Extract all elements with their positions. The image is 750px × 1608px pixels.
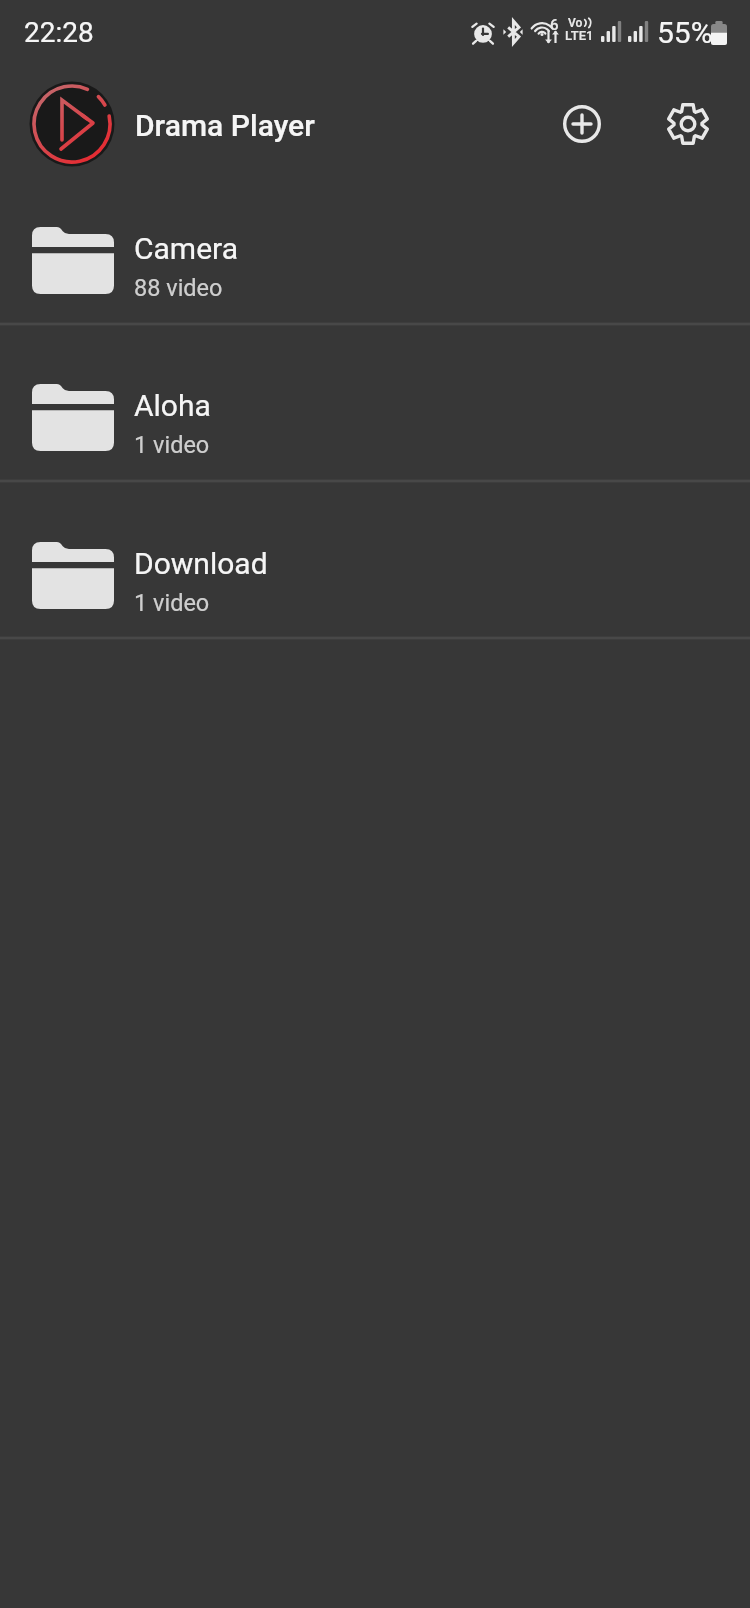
staticText: Drama Player [135, 108, 315, 143]
button[interactable]: Aloha [0, 323, 750, 480]
staticText: Camera [134, 231, 238, 266]
button[interactable]: Camera [0, 166, 750, 323]
button[interactable]: Settings [652, 88, 724, 160]
button[interactable]: Add [546, 88, 618, 160]
staticText: 55% [657, 15, 713, 50]
staticText: 6 [550, 16, 559, 34]
staticText: 22:28 [24, 16, 94, 49]
staticText: LTE1 [565, 28, 594, 43]
staticText: Vo [568, 16, 583, 30]
staticText: 1 video [134, 431, 210, 459]
staticText: Aloha [134, 388, 211, 423]
staticText: 88 video [134, 274, 223, 302]
button[interactable]: Download [0, 481, 750, 638]
staticText: Download [134, 546, 268, 581]
staticText: 1 video [134, 589, 210, 617]
